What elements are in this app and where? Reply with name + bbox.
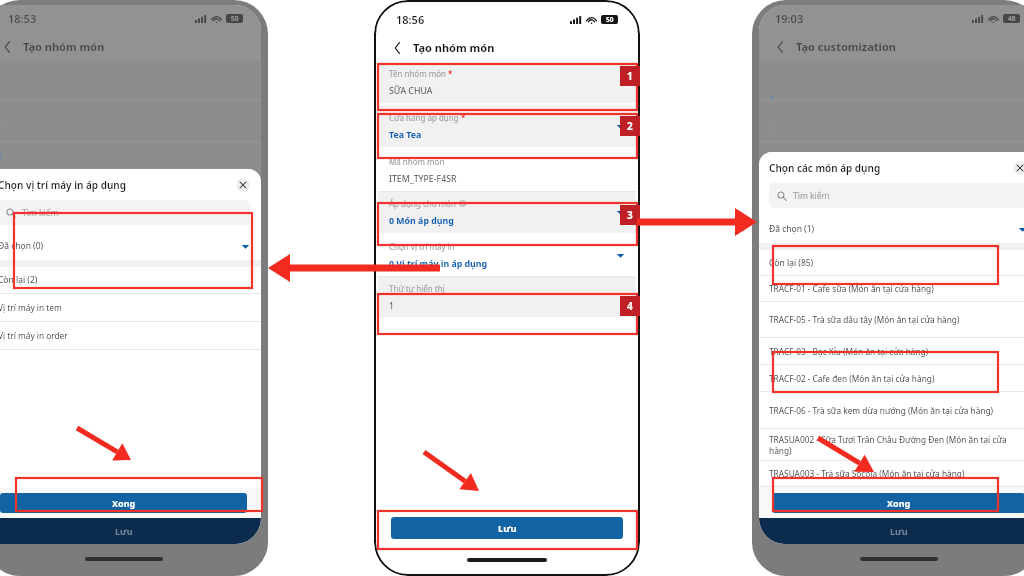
staticText: TRACF-05 - Trà sữa dâu tây (Món ăn tại c… bbox=[769, 314, 960, 325]
staticText: Vị trí máy in order bbox=[0, 330, 68, 341]
staticText: Tạo nhóm món bbox=[23, 39, 105, 54]
staticText: TRASUA003 - Trà sữa Socola (Món ăn tại c… bbox=[769, 468, 965, 479]
button[interactable]: Xong bbox=[772, 493, 1024, 513]
button[interactable]: Back bbox=[0, 39, 15, 55]
staticText: 1 bbox=[389, 300, 395, 312]
staticText: Còn lại (2) bbox=[0, 274, 38, 286]
button[interactable]: Cửa hàng áp dụng bbox=[378, 106, 636, 147]
button[interactable]: Chọn vị trí máy in bbox=[378, 235, 636, 276]
staticText: T bbox=[770, 156, 774, 165]
staticText: TRACF-06 - Trà sữa kem dừa nướng (Món ăn… bbox=[769, 405, 994, 416]
staticText: 0 Vị trí máy in áp dụng bbox=[389, 258, 488, 270]
staticText: Tìm kiếm bbox=[793, 190, 830, 202]
button[interactable]: TRACF-01 - Cafe sữa (Món ăn tại cửa hàng… bbox=[759, 276, 1024, 301]
button[interactable]: TRACF-05 - Trà sữa dâu tây (Món ăn tại c… bbox=[759, 302, 1024, 337]
staticText: 48 bbox=[1008, 14, 1016, 23]
staticText: Lưu bbox=[890, 525, 908, 537]
staticText: T bbox=[0, 153, 3, 162]
staticText: Lưu bbox=[115, 525, 133, 537]
staticText: TRASUA002 - Sữa Tươi Trân Châu Đường Đen… bbox=[769, 434, 1024, 456]
button[interactable]: Tên nhóm món bbox=[378, 62, 636, 103]
button[interactable]: Back bbox=[772, 39, 788, 55]
button[interactable]: Vị trí máy in order bbox=[0, 322, 261, 349]
staticText: 19:03 bbox=[775, 11, 804, 26]
staticText: Xong bbox=[112, 497, 136, 509]
button[interactable]: Đã chọn (0) bbox=[0, 232, 261, 260]
staticText: Áp dụng cho món bbox=[389, 198, 456, 209]
staticText: | bbox=[770, 280, 774, 289]
button[interactable]: Close bbox=[1013, 161, 1024, 175]
staticText: Vị trí máy in tem bbox=[0, 302, 62, 313]
staticText: Mã nhóm món bbox=[389, 156, 445, 167]
button[interactable]: Close bbox=[236, 178, 250, 192]
staticText: 18:56 bbox=[396, 12, 425, 27]
staticText: Tạo nhóm món bbox=[413, 40, 495, 55]
staticText: 3 bbox=[627, 208, 633, 222]
button[interactable]: TRASUA003 - Trà sữa Socola (Món ăn tại c… bbox=[759, 461, 1024, 486]
staticText: Tạo customization bbox=[796, 39, 896, 54]
button[interactable]: TRACF-03 - Bạc Xỉu (Món ăn tại cửa hàng) bbox=[759, 338, 1024, 364]
staticText: Thứ tự hiển thị bbox=[389, 283, 445, 294]
button[interactable]: Áp dụng cho món bbox=[378, 192, 636, 233]
staticText: * bbox=[461, 112, 466, 123]
staticText: Còn lại (85) bbox=[769, 257, 814, 269]
staticText: 18:53 bbox=[8, 11, 37, 26]
button[interactable]: Xong bbox=[0, 493, 247, 513]
staticText: 0 Món áp dụng bbox=[389, 215, 454, 227]
staticText: 50 bbox=[606, 15, 614, 24]
button[interactable]: TRASUA002 - Sữa Tươi Trân Châu Đường Đen… bbox=[759, 429, 1024, 460]
staticText: 0 bbox=[770, 218, 774, 227]
button[interactable]: Thứ tự hiển thị bbox=[378, 277, 636, 317]
staticText: Xong bbox=[887, 497, 911, 509]
staticText: 4 bbox=[627, 299, 633, 313]
button[interactable]: Đã chọn (1) bbox=[759, 215, 1024, 243]
button[interactable]: Lưu bbox=[391, 517, 623, 539]
staticText: * bbox=[448, 68, 453, 79]
staticText: T bbox=[770, 94, 774, 103]
staticText: 0 bbox=[0, 273, 3, 282]
staticText: C bbox=[0, 303, 4, 312]
staticText: Lưu bbox=[498, 522, 517, 535]
button[interactable]: TRACF-02 - Cafe đen (Món ăn tại cửa hàng… bbox=[759, 365, 1024, 391]
staticText: Chọn các món áp dụng bbox=[769, 161, 881, 175]
staticText: 1 bbox=[627, 69, 633, 83]
button[interactable]: Tìm kiếm bbox=[769, 183, 1024, 208]
staticText: M bbox=[0, 183, 5, 192]
staticText: N bbox=[770, 249, 775, 258]
staticText: TRACF-01 - Cafe sữa (Món ăn tại cửa hàng… bbox=[769, 283, 934, 294]
staticText: 50 bbox=[231, 14, 239, 23]
staticText: 2 bbox=[627, 119, 633, 133]
staticText: Chọn vị trí máy in bbox=[389, 241, 455, 252]
staticText: Cửa hàng áp dụng bbox=[389, 112, 459, 123]
button[interactable]: Vị trí máy in tem bbox=[0, 294, 261, 321]
staticText: 2 bbox=[0, 333, 3, 342]
staticText: Tìm kiếm bbox=[22, 207, 59, 219]
button[interactable]: Tìm kiếm bbox=[0, 200, 250, 225]
staticText: ITEM_TYPE-F4SR bbox=[389, 173, 457, 185]
staticText: TRACF-03 - Bạc Xỉu (Món ăn tại cửa hàng) bbox=[769, 346, 929, 357]
staticText: A bbox=[0, 243, 4, 252]
button[interactable]: Mã nhóm món bbox=[378, 150, 636, 191]
button[interactable]: Back bbox=[389, 40, 405, 56]
staticText: Tên nhóm món bbox=[389, 68, 446, 79]
staticText: TRACF-02 - Cafe đen (Món ăn tại cửa hàng… bbox=[769, 373, 935, 384]
staticText: Chọn vị trí máy in áp dụng bbox=[0, 178, 126, 192]
staticText: Tea Tea bbox=[389, 129, 422, 141]
staticText: Đã chọn (0) bbox=[0, 240, 44, 252]
staticText: Đã chọn (1) bbox=[769, 223, 815, 235]
button[interactable]: TRACF-06 - Trà sữa kem dừa nướng (Món ăn… bbox=[759, 392, 1024, 428]
staticText: SỮA CHUA bbox=[389, 85, 433, 97]
